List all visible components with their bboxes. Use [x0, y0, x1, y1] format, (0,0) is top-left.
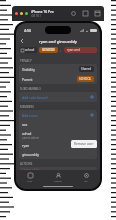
button[interactable]: ginoueddy — [19, 150, 97, 159]
staticText: Add subchannel — [22, 95, 48, 100]
staticText: Add users — [22, 113, 38, 118]
staticText: Me — [84, 179, 88, 182]
button[interactable]: Me — [72, 170, 100, 184]
button[interactable]: Add subchannel — [19, 92, 97, 102]
button[interactable]: Home — [70, 10, 77, 17]
staticText: Shared — [81, 67, 92, 71]
button[interactable]: ryan — [19, 141, 97, 150]
staticText: SCHOOL — [79, 77, 92, 81]
staticText: SUBCHANNELS — [20, 87, 41, 91]
staticText: ginoueddy — [22, 152, 40, 157]
staticText: ryan and ginoueddy — [67, 48, 94, 52]
staticText: People — [54, 179, 62, 182]
staticText: parent admin — [22, 136, 40, 140]
staticText: iPhone 16 Pro — [31, 9, 54, 14]
button[interactable]: avhsd — [19, 129, 97, 141]
staticText: Chat — [27, 179, 33, 182]
button[interactable]: Visibility — [19, 64, 97, 74]
staticText: school — [25, 48, 35, 52]
staticText: ryan and ginoueddy — [39, 39, 77, 44]
button[interactable]: school — [19, 47, 37, 53]
button[interactable]: Chat — [16, 170, 44, 184]
staticText: MEMBERS — [20, 105, 34, 109]
staticText: ACTIONS — [20, 162, 33, 166]
staticText: PRIVACY — [20, 59, 32, 63]
button[interactable]: Parent — [19, 74, 97, 84]
button[interactable]: Add users — [19, 110, 97, 120]
button[interactable]: Rotate — [94, 10, 101, 17]
button[interactable]: Back — [18, 37, 26, 45]
staticText: Visibility — [22, 67, 36, 72]
button[interactable]: Screenshot — [82, 10, 89, 17]
staticText: sso — [22, 122, 28, 127]
button[interactable]: GENESIS — [39, 47, 58, 53]
button[interactable]: sso — [19, 120, 97, 129]
staticText: 4:56 — [24, 28, 32, 33]
button[interactable]: Edit member — [88, 143, 94, 149]
staticText: avhsd — [22, 131, 32, 136]
staticText: › — [60, 48, 62, 53]
button[interactable]: People — [44, 170, 72, 184]
staticText: GENESIS — [42, 48, 55, 52]
staticText: iOS 18.1 — [31, 14, 41, 18]
staticText: Remove user — [74, 142, 94, 146]
staticText: ryan — [22, 143, 30, 148]
staticText: Parent — [22, 77, 33, 82]
staticText: Leave chat... — [22, 167, 42, 170]
button[interactable]: Remove user — [71, 140, 97, 148]
button[interactable]: Leave chat... — [19, 167, 97, 170]
button[interactable]: ryan and ginoueddy — [64, 47, 97, 53]
